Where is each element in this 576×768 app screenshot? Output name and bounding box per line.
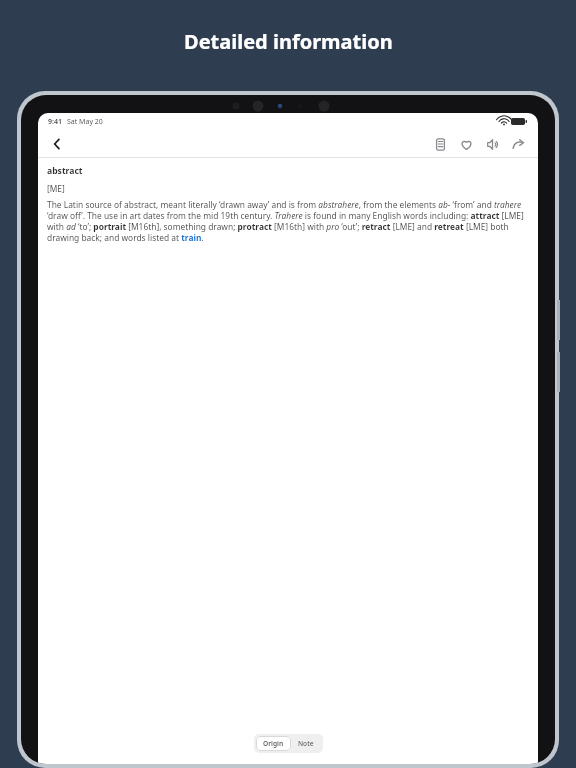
staticText: The Latin source of abstract, meant lite… <box>47 199 529 243</box>
button[interactable]: Back <box>46 133 68 155</box>
staticText: abstract <box>47 165 83 177</box>
button[interactable]: Origin <box>256 736 291 751</box>
staticText: Detailed information <box>184 28 393 55</box>
staticText: [ME] <box>47 183 65 194</box>
button[interactable]: Note <box>291 736 321 751</box>
button[interactable]: Share <box>508 134 528 154</box>
staticText: Note <box>298 739 314 748</box>
button[interactable]: Entry list <box>430 134 450 154</box>
button[interactable]: Pronounce <box>482 134 502 154</box>
staticText: Origin <box>263 739 284 748</box>
button[interactable]: Favourite <box>456 134 476 154</box>
staticText: Sat May 20 <box>67 117 103 127</box>
staticText: 9:41 <box>48 117 62 127</box>
